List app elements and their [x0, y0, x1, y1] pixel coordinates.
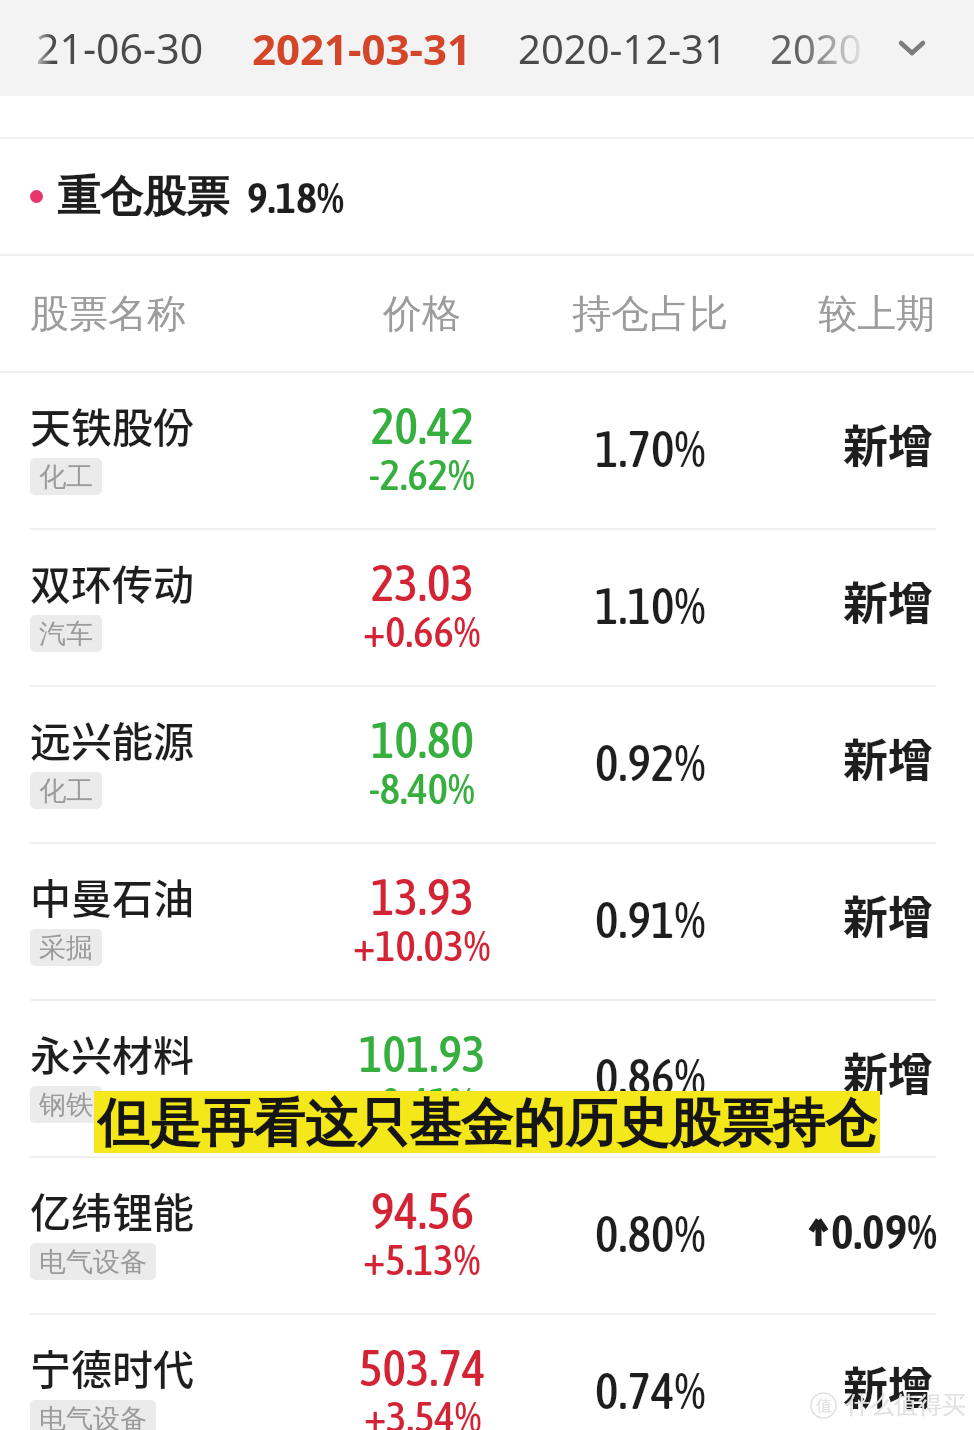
- staticText: 0.09%: [831, 1204, 937, 1259]
- staticText: 新增: [843, 1353, 934, 1418]
- staticText: 汽车: [39, 617, 93, 651]
- staticText: 化工: [39, 460, 93, 494]
- staticText: -0.41%: [370, 1078, 476, 1127]
- staticText: 股票名称: [30, 289, 186, 338]
- staticText: +10.03%: [353, 921, 491, 970]
- staticText: +5.13%: [363, 1235, 481, 1284]
- staticText: 较上期: [818, 289, 935, 338]
- staticText: 2020-12-31: [518, 21, 727, 75]
- staticText: 宁德时代: [30, 1337, 194, 1396]
- staticText: -8.40%: [369, 764, 475, 813]
- staticText: +0.66%: [363, 607, 481, 656]
- staticText: 10.80: [371, 711, 474, 768]
- staticText: 新增: [843, 725, 934, 790]
- staticText: 503.74: [359, 1339, 486, 1396]
- staticText: 钢铁: [39, 1088, 93, 1122]
- staticText: 什么值得买: [846, 1390, 966, 1420]
- staticText: 23.03: [371, 554, 474, 611]
- staticText: 电气设备: [39, 1402, 147, 1430]
- staticText: 94.56: [371, 1182, 474, 1239]
- button[interactable]: 宁德时代: [0, 1315, 974, 1430]
- staticText: 亿纬锂能: [30, 1180, 194, 1239]
- staticText: -2.62%: [369, 450, 475, 499]
- staticText: 电气设备: [39, 1245, 147, 1279]
- staticText: 0.80%: [595, 1205, 706, 1262]
- staticText: 新增: [843, 568, 934, 633]
- staticText: 重仓股票: [57, 170, 229, 224]
- button[interactable]: Show more periods: [874, 0, 950, 96]
- staticText: 9.18%: [247, 172, 345, 222]
- button[interactable]: 2021-03-31: [252, 0, 472, 96]
- staticText: 价格: [383, 289, 461, 338]
- button[interactable]: 21-06-30: [36, 0, 204, 96]
- button[interactable]: 远兴能源: [0, 687, 974, 842]
- staticText: 新增: [843, 1039, 934, 1104]
- staticText: 20.42: [371, 397, 474, 454]
- button[interactable]: 中曼石油: [0, 844, 974, 999]
- button[interactable]: 天铁股份: [0, 373, 974, 528]
- staticText: 0.86%: [595, 1048, 706, 1105]
- staticText: 0.92%: [595, 734, 706, 791]
- staticText: 1.70%: [595, 420, 706, 477]
- button[interactable]: 亿纬锂能: [0, 1158, 974, 1313]
- button[interactable]: 2020: [770, 0, 862, 96]
- staticText: 双环传动: [30, 552, 194, 611]
- staticText: 永兴材料: [30, 1023, 194, 1082]
- staticText: 天铁股份: [30, 395, 194, 454]
- staticText: 化工: [39, 774, 93, 808]
- staticText: 新增: [843, 882, 934, 947]
- staticText: 0.74%: [595, 1362, 706, 1419]
- staticText: 远兴能源: [30, 709, 194, 768]
- button[interactable]: 2020-12-31: [518, 0, 727, 96]
- button[interactable]: 双环传动: [0, 530, 974, 685]
- staticText: 中曼石油: [30, 866, 194, 925]
- button[interactable]: 重仓股票: [0, 139, 974, 254]
- staticText: 0.91%: [595, 891, 706, 948]
- staticText: 但是再看这只基金的历史股票持仓: [97, 1091, 877, 1153]
- staticText: 1.10%: [595, 577, 706, 634]
- staticText: 101.93: [359, 1025, 486, 1082]
- staticText: 新增: [843, 411, 934, 476]
- staticText: 2020: [770, 21, 862, 75]
- staticText: +3.54%: [364, 1392, 482, 1430]
- staticText: 采掘: [39, 931, 93, 965]
- button[interactable]: 永兴材料: [0, 1001, 974, 1156]
- staticText: 21-06-30: [36, 20, 204, 76]
- staticText: 2021-03-31: [252, 20, 472, 77]
- staticText: 持仓占比: [572, 289, 728, 338]
- staticText: 值: [816, 1396, 832, 1416]
- staticText: 13.93: [371, 868, 474, 925]
